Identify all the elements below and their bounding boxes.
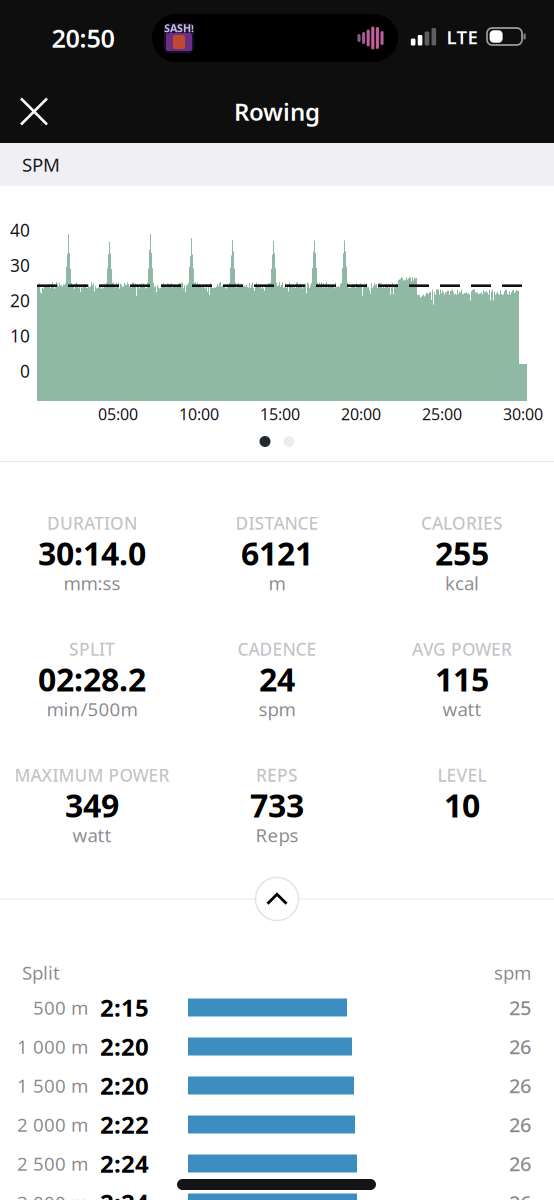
staticText: 115 (435, 658, 489, 700)
staticText: 3 000 m (17, 1190, 88, 1200)
staticText: watt (72, 823, 111, 847)
staticText: Reps (255, 823, 298, 847)
staticText: 500 m (33, 995, 88, 1020)
staticText: min/500m (46, 697, 137, 721)
staticText: Split (22, 960, 60, 985)
staticText: 2:24 (100, 1148, 149, 1179)
staticText: 2:20 (100, 1070, 149, 1101)
staticText: 1 000 m (17, 1034, 88, 1059)
button[interactable]: Close (0, 80, 68, 143)
staticText: kcal (445, 571, 479, 595)
staticText: 15:00 (260, 403, 300, 425)
staticText: watt (442, 697, 481, 721)
staticText: 30 (10, 254, 30, 277)
staticText: REPS (256, 763, 298, 786)
staticText: LEVEL (437, 763, 486, 786)
staticText: 30:00 (503, 403, 543, 425)
staticText: 0 (20, 359, 30, 382)
staticText: 10:00 (179, 403, 219, 425)
staticText: 10 (444, 784, 480, 826)
staticText: Rowing (234, 96, 320, 127)
staticText: 26 (509, 1150, 531, 1177)
staticText: 40 (10, 218, 30, 241)
staticText: 26 (509, 1033, 531, 1060)
staticText: SPM (22, 152, 60, 177)
staticText: spm (258, 697, 295, 721)
staticText: 30:14.0 (38, 532, 146, 574)
staticText: 2 500 m (17, 1151, 88, 1176)
staticText: 26 (509, 1111, 531, 1138)
staticText: 20:50 (51, 21, 114, 55)
staticText: 20 (10, 289, 30, 312)
staticText: 2:20 (100, 1031, 149, 1062)
staticText: CADENCE (237, 637, 316, 660)
staticText: m (268, 571, 285, 595)
staticText: 2:22 (100, 1109, 149, 1140)
staticText: 255 (435, 532, 489, 574)
staticText: 6121 (241, 532, 313, 574)
staticText: LTE (446, 25, 477, 49)
staticText: 1 500 m (17, 1073, 88, 1098)
staticText: 733 (250, 784, 304, 826)
staticText: 25:00 (422, 403, 462, 425)
staticText: CALORIES (421, 511, 503, 534)
staticText: SPLIT (69, 637, 115, 660)
staticText: 2:24 (100, 1187, 149, 1200)
staticText: 26 (509, 1189, 531, 1200)
staticText: DISTANCE (235, 511, 318, 534)
staticText: mm:ss (63, 571, 120, 595)
staticText: spm (494, 960, 531, 985)
staticText: 20:00 (341, 403, 381, 425)
button[interactable]: Collapse (246, 868, 308, 930)
staticText: SASH! (164, 21, 194, 35)
staticText: 2 000 m (17, 1112, 88, 1137)
staticText: AVG POWER (412, 637, 512, 660)
staticText: MAXIMUM POWER (14, 763, 169, 786)
staticText: 10 (10, 324, 30, 347)
staticText: 349 (65, 784, 119, 826)
staticText: 24 (259, 658, 295, 700)
staticText: 05:00 (98, 403, 138, 425)
staticText: DURATION (47, 511, 137, 534)
staticText: 26 (509, 1072, 531, 1099)
staticText: 02:28.2 (38, 658, 146, 700)
staticText: 2:15 (100, 992, 149, 1023)
staticText: 25 (509, 994, 531, 1021)
